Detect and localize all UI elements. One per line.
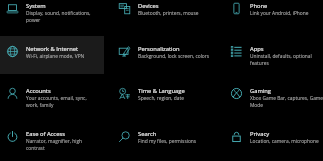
staticText: Location, camera, microphone (250, 138, 319, 145)
staticText: Devices (138, 2, 159, 10)
button[interactable]: Network & Internet (0, 36, 104, 74)
staticText: Ease of Access (26, 130, 65, 138)
staticText: System (26, 2, 46, 10)
staticText: Speech, region, date (138, 95, 184, 102)
staticText: Gaming (250, 87, 271, 95)
button[interactable]: Devices (112, 0, 216, 31)
staticText: Xbox Game Bar, captures, Game Mode (250, 95, 323, 109)
staticText: Accounts (26, 87, 51, 95)
staticText: Display, sound, notifications, power (26, 10, 100, 24)
staticText: Personalization (138, 45, 180, 53)
button[interactable]: Phone (224, 0, 323, 31)
button[interactable]: Time & Language (112, 78, 216, 116)
button[interactable]: Apps (224, 36, 323, 74)
staticText: Find my files, permissions (138, 138, 197, 145)
button[interactable]: Ease of Access (0, 121, 104, 159)
staticText: Your accounts, email, sync, work, family (26, 95, 100, 109)
button[interactable]: Accounts (0, 78, 104, 116)
button[interactable]: Privacy (224, 121, 323, 159)
staticText: Privacy (250, 130, 270, 138)
staticText: Uninstall, defaults, optional features (250, 53, 323, 67)
staticText: Wi-Fi, airplane mode, VPN (26, 53, 85, 60)
staticText: Apps (250, 45, 264, 53)
staticText: Narrator, magnifier, high contrast (26, 138, 100, 152)
staticText: Phone (250, 2, 268, 10)
button[interactable]: Personalization (112, 36, 216, 74)
staticText: Time & Language (138, 87, 185, 95)
staticText: Network & Internet (26, 45, 79, 53)
staticText: Background, lock screen, colors (138, 53, 210, 60)
staticText: Search (138, 130, 157, 138)
staticText: Link your Android, iPhone (250, 10, 309, 17)
button[interactable]: Gaming (224, 78, 323, 116)
button[interactable]: Search (112, 121, 216, 159)
button[interactable]: System (0, 0, 104, 31)
staticText: Bluetooth, printers, mouse (138, 10, 199, 17)
